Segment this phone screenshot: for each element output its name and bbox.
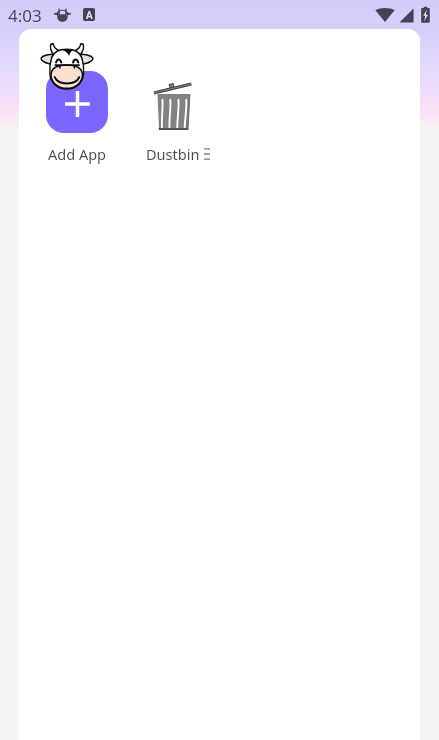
button[interactable]: Dustbin options [204,148,210,160]
other: Wi-Fi [375,7,395,22]
other: Mobile signal [399,8,414,23]
staticText: A [86,8,93,21]
staticText: 4:03 [8,4,42,27]
staticText: Add App [27,144,127,164]
button[interactable]: Dustbin [127,31,245,167]
other: Notification [54,8,71,22]
button[interactable]: Add App [27,31,145,167]
other: Battery charging [419,6,432,24]
staticText: Dustbin [146,144,200,164]
